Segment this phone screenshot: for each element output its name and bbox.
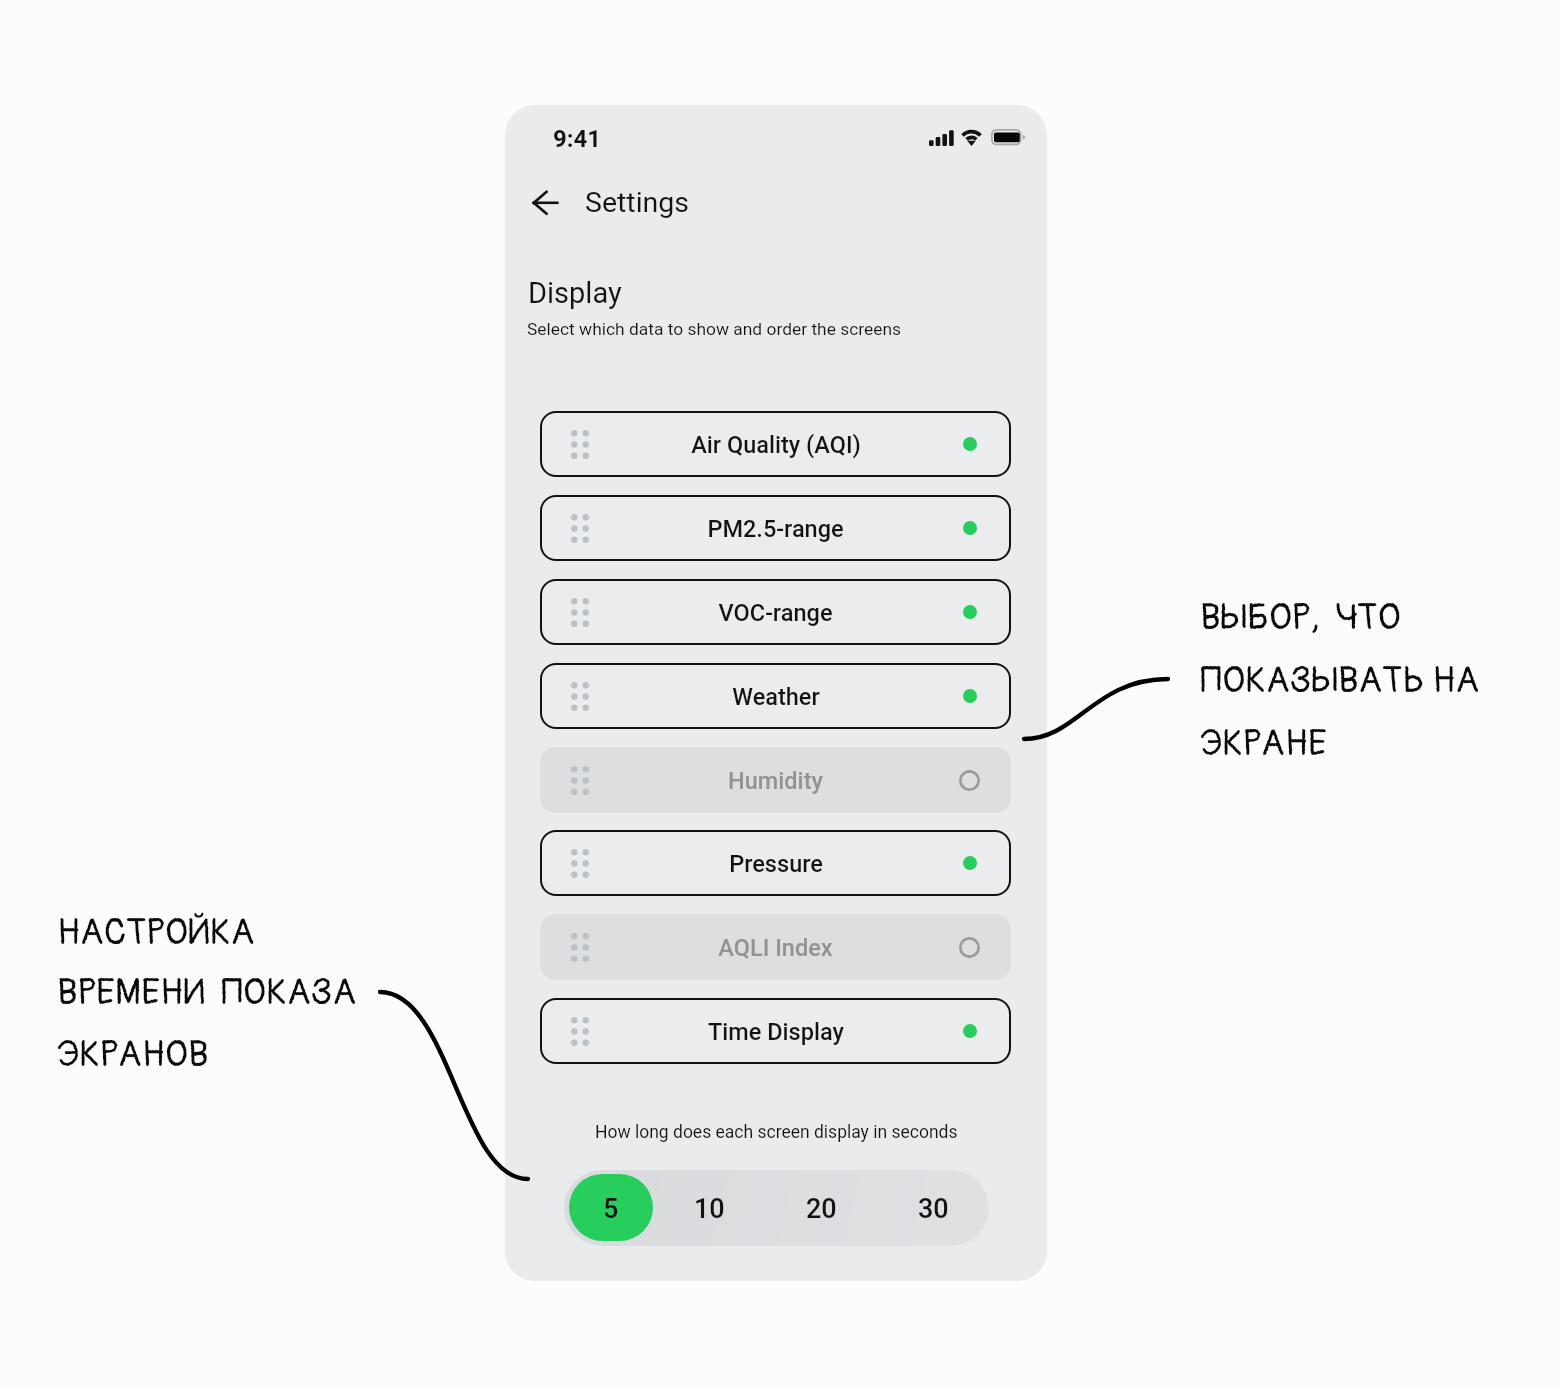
button[interactable]: AQLI Index bbox=[540, 914, 1011, 980]
staticText: AQLI Index bbox=[718, 934, 833, 962]
staticText: ВРЕМЕНИ ПОКАЗА bbox=[57, 970, 357, 1016]
staticText: ЭКРАНОВ bbox=[57, 1032, 209, 1078]
staticText: Select which data to show and order the … bbox=[527, 319, 902, 339]
staticText: 10 bbox=[694, 1193, 725, 1225]
staticText: 5 bbox=[603, 1193, 619, 1225]
staticText: 20 bbox=[806, 1193, 837, 1225]
staticText: Time Display bbox=[708, 1018, 844, 1046]
staticText: VOC-range bbox=[718, 599, 833, 627]
button[interactable]: PM2.5-range bbox=[540, 495, 1011, 561]
staticText: Display bbox=[528, 276, 622, 310]
staticText: ВЫБОР, ЧТО bbox=[1200, 595, 1401, 641]
button[interactable]: 30 bbox=[877, 1170, 989, 1246]
staticText: НАСТРОЙКА bbox=[57, 910, 255, 956]
button[interactable]: 10 bbox=[653, 1170, 765, 1246]
staticText: Settings bbox=[585, 186, 690, 219]
staticText: PM2.5-range bbox=[707, 515, 844, 543]
button[interactable]: Pressure bbox=[540, 830, 1011, 896]
staticText: How long does each screen display in sec… bbox=[595, 1122, 958, 1143]
button[interactable]: Weather bbox=[540, 663, 1011, 729]
button[interactable]: Time Display bbox=[540, 998, 1011, 1064]
button[interactable]: 20 bbox=[765, 1170, 877, 1246]
button[interactable]: Back bbox=[524, 181, 568, 225]
button[interactable]: VOC-range bbox=[540, 579, 1011, 645]
staticText: Weather bbox=[732, 683, 820, 711]
button[interactable]: Air Quality (AQI) bbox=[540, 411, 1011, 477]
button[interactable]: 5 bbox=[569, 1174, 653, 1241]
staticText: ПОКАЗЫВАТЬ НА bbox=[1200, 658, 1480, 704]
staticText: ЭКРАНЕ bbox=[1200, 721, 1327, 767]
staticText: 9:41 bbox=[553, 125, 602, 153]
staticText: Humidity bbox=[728, 767, 823, 795]
staticText: Air Quality (AQI) bbox=[691, 431, 861, 459]
staticText: Pressure bbox=[729, 850, 823, 878]
button[interactable]: Humidity bbox=[540, 747, 1011, 813]
staticText: 30 bbox=[918, 1193, 949, 1225]
